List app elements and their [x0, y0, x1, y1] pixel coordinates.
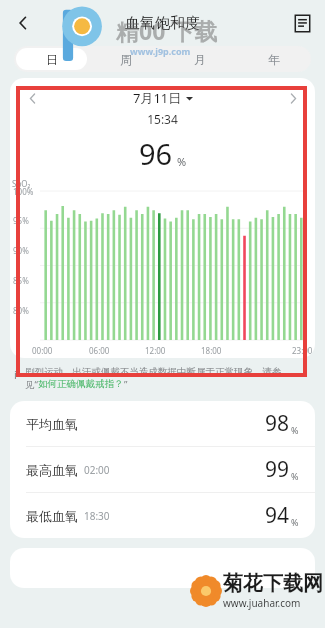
staticText: % — [291, 516, 299, 528]
staticText: SpO₂ — [12, 178, 31, 189]
staticText: 02:00 — [84, 463, 110, 477]
staticText: 精00 下载 — [116, 15, 218, 46]
staticText: 平均血氧 — [26, 416, 78, 432]
staticText: 见“ — [25, 378, 38, 391]
button[interactable]: 最高血氧 — [10, 447, 315, 492]
staticText: 最高血氧 — [26, 462, 78, 478]
button[interactable]: 年 — [239, 48, 309, 70]
staticText: 血氧饱和度 — [125, 14, 200, 33]
button[interactable]: Next day — [281, 87, 305, 109]
staticText: 月 — [194, 52, 206, 67]
staticText: 日 — [46, 52, 58, 67]
button[interactable]: 日 — [16, 48, 87, 70]
staticText: 85% — [13, 275, 29, 286]
staticText: % — [291, 424, 299, 436]
staticText: 06:00 — [89, 345, 110, 356]
staticText: 周 — [120, 52, 132, 67]
staticText: 12:00 — [145, 345, 166, 356]
staticText: % — [291, 470, 299, 482]
staticText: 18:00 — [201, 345, 222, 356]
staticText: 98 — [265, 409, 290, 438]
staticText: 80% — [13, 305, 29, 316]
staticText: 15:34 — [10, 111, 315, 127]
staticText: 95% — [13, 215, 29, 226]
button[interactable]: 如何正确佩戴戒指？ — [38, 378, 124, 390]
staticText: 7月11日 — [133, 89, 182, 107]
staticText: 23:00 — [292, 345, 313, 356]
staticText: 94 — [265, 501, 290, 530]
staticText: 100% — [13, 186, 34, 197]
staticText: 菊花下载网 — [223, 571, 323, 596]
staticText: 96 — [139, 134, 173, 173]
button[interactable]: 周 — [91, 48, 161, 70]
staticText: 最低血氧 — [26, 508, 78, 524]
staticText: 剧烈运动、出汗或佩戴不当造成数据中断属于正常现象。请参 — [25, 366, 282, 378]
button[interactable]: 最低血氧 — [10, 493, 315, 538]
staticText: ” — [124, 378, 128, 391]
staticText: www.j9p.com — [130, 45, 191, 57]
staticText: 99 — [265, 455, 290, 484]
button[interactable]: Records — [285, 6, 319, 40]
staticText: % — [177, 154, 187, 169]
staticText: 年 — [268, 52, 280, 67]
button[interactable]: Back — [6, 6, 40, 40]
button[interactable]: 月 — [165, 48, 235, 70]
staticText: i — [14, 367, 17, 382]
staticText: 18:30 — [84, 509, 110, 523]
staticText: www.juahar.com — [223, 596, 301, 610]
staticText: 90% — [13, 245, 29, 256]
staticText: 00:00 — [32, 345, 53, 356]
button[interactable]: Previous day — [20, 87, 44, 109]
button[interactable]: 平均血氧 — [10, 401, 315, 446]
staticText: 如何正确佩戴戒指？ — [38, 378, 124, 390]
